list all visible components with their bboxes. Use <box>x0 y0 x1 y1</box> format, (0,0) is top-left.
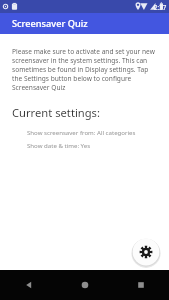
button[interactable]: Back <box>0 270 57 300</box>
staticText: Please make sure to activate and set you… <box>12 47 159 92</box>
button[interactable]: Recent apps <box>113 270 169 300</box>
staticText: 2:37 <box>154 3 167 11</box>
staticText: Show screensaver from: All categories <box>27 128 136 136</box>
button[interactable]: Home <box>57 270 113 300</box>
staticText: Current settings: <box>12 105 100 120</box>
button[interactable]: Settings <box>130 236 162 268</box>
staticText: Show date & time: Yes <box>27 141 91 149</box>
staticText: Screensaver Quiz <box>12 17 88 30</box>
button[interactable]: Screensaver Quiz <box>0 13 169 34</box>
